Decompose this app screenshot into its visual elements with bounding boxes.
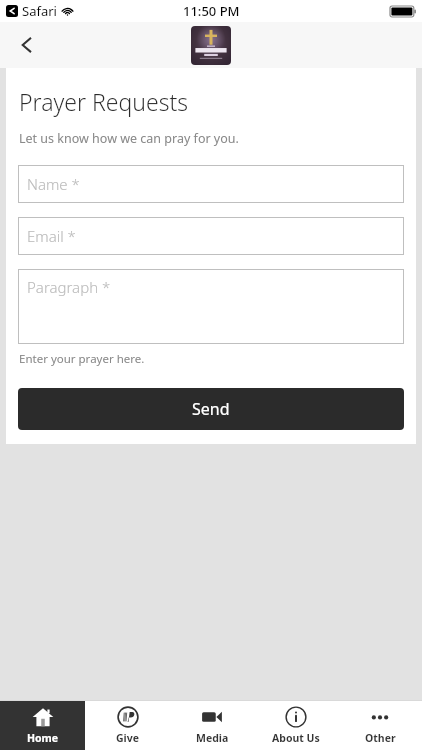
button[interactable]: Give [85,701,170,750]
staticText: Give [116,731,140,745]
staticText: Safari [22,2,57,20]
staticText: Paragraph * [27,277,111,297]
button[interactable]: Send [18,388,404,430]
button[interactable]: Media [170,701,254,750]
staticText: Media [196,731,229,745]
staticText: Prayer Requests [19,86,188,117]
staticText: Home [27,731,59,745]
button[interactable]: Name * [18,165,404,203]
button[interactable]: Email * [18,217,404,255]
staticText: About Us [272,731,320,745]
button[interactable]: Home [0,701,85,750]
staticText: Other [365,731,396,745]
staticText: Enter your prayer here. [19,351,145,367]
staticText: Email * [27,226,76,246]
staticText: Name * [27,174,80,194]
staticText: 11:50 PM [183,2,240,20]
button[interactable]: Paragraph * [18,269,404,344]
staticText: Let us know how we can pray for you. [19,130,239,147]
button[interactable]: Other [338,701,422,750]
button[interactable]: Back [10,28,44,62]
staticText: Send [192,398,230,420]
button[interactable]: The Prevailing Church home [191,26,231,65]
button[interactable]: About Us [254,701,338,750]
